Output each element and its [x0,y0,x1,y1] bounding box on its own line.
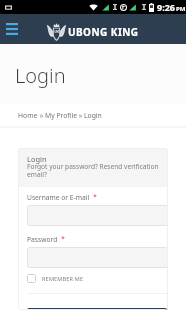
staticText: Password [27,235,58,244]
staticText: Login [15,62,66,89]
staticText: Username or E-mail [27,193,90,202]
staticText: * [93,192,97,202]
staticText: 9:26 [157,1,175,13]
staticText: UBONG KING [68,25,139,39]
button[interactable]: Open navigation menu [2,19,22,39]
button[interactable] [27,205,168,226]
staticText: Login [84,111,102,120]
staticText: Login [27,154,47,164]
staticText: PM [176,5,186,13]
button[interactable]: REMEMBER ME [27,274,84,283]
button[interactable]: Home [18,111,38,120]
button[interactable]: My Profile [45,111,77,120]
button[interactable]: LOGIN [27,308,168,310]
staticText: Forgot your password? Resend verificatio… [27,162,168,179]
staticText: REMEMBER ME [42,275,84,282]
staticText: * [61,234,65,244]
staticText: » [38,111,45,120]
button[interactable] [27,247,168,268]
staticText: » [77,111,84,120]
